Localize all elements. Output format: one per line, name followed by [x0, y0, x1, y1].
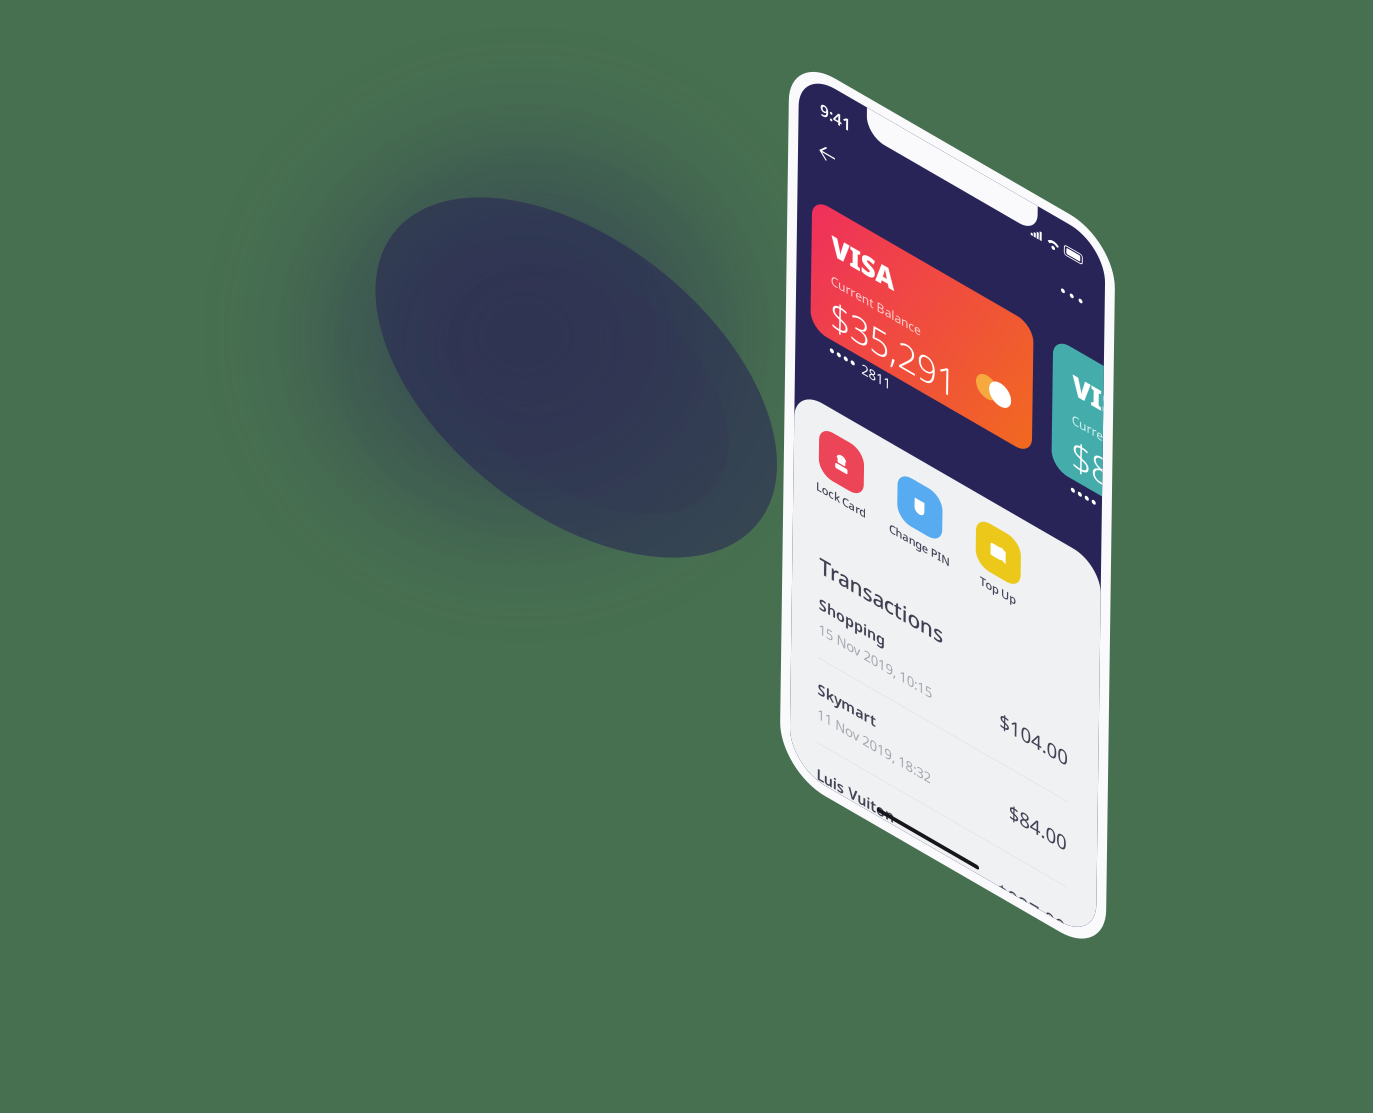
staticText: Current Balance: [349, 225, 459, 245]
staticText: VISA: [349, 173, 426, 215]
staticText: $8,420: [349, 245, 479, 302]
